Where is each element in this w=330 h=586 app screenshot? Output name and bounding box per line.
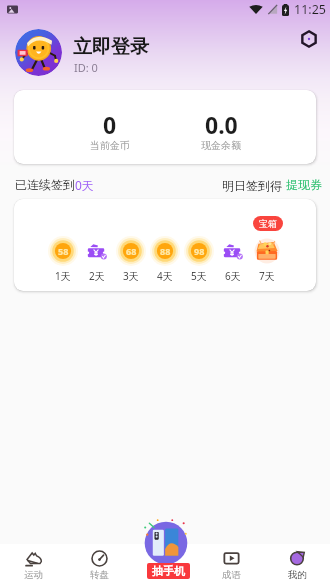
staticText: 5天 bbox=[191, 269, 207, 283]
staticText: 当前金币 bbox=[90, 139, 130, 152]
button[interactable]: 明日签到得 bbox=[222, 177, 322, 193]
staticText: 宝箱 bbox=[259, 218, 277, 229]
staticText: 2天 bbox=[89, 269, 105, 283]
button[interactable]: Settings bbox=[293, 23, 325, 55]
staticText: 7天 bbox=[259, 269, 275, 283]
staticText: 已连续签到 bbox=[15, 177, 75, 192]
staticText: 88 bbox=[160, 245, 171, 257]
button[interactable]: 0 bbox=[14, 90, 316, 164]
button[interactable]: 6天 bbox=[216, 236, 250, 282]
staticText: ID: 0 bbox=[74, 60, 98, 75]
button[interactable]: 抽手机 bbox=[140, 516, 192, 578]
staticText: 6天 bbox=[225, 269, 241, 283]
staticText: 现金余额 bbox=[201, 139, 241, 152]
staticText: 我的 bbox=[288, 569, 307, 581]
staticText: 3天 bbox=[123, 269, 139, 283]
staticText: 0天 bbox=[75, 177, 94, 193]
button[interactable]: 运动 bbox=[0, 544, 66, 586]
staticText: 转盘 bbox=[90, 569, 109, 581]
staticText: 成语 bbox=[222, 569, 241, 581]
staticText: 明日签到得 bbox=[222, 177, 286, 193]
button[interactable]: 98 bbox=[182, 236, 216, 282]
staticText: 11:25 bbox=[294, 1, 326, 18]
button[interactable]: 成语 bbox=[198, 544, 264, 586]
button[interactable]: 58 bbox=[46, 236, 80, 282]
button[interactable]: 我的 bbox=[264, 544, 330, 586]
button[interactable]: Avatar bbox=[15, 29, 62, 76]
staticText: 立即登录 bbox=[73, 35, 149, 59]
staticText: 提现券 bbox=[286, 177, 322, 192]
button[interactable]: 68 bbox=[114, 236, 148, 282]
staticText: 0 bbox=[103, 109, 117, 140]
staticText: 98 bbox=[194, 245, 205, 257]
staticText: 4天 bbox=[157, 269, 173, 283]
button[interactable]: 88 bbox=[148, 236, 182, 282]
button[interactable]: 7天 bbox=[250, 236, 284, 282]
staticText: 68 bbox=[126, 245, 137, 257]
staticText: 抽手机 bbox=[152, 564, 185, 578]
button[interactable]: 转盘 bbox=[66, 544, 132, 586]
staticText: 1天 bbox=[55, 269, 71, 283]
staticText: 运动 bbox=[24, 569, 43, 581]
button[interactable]: 2天 bbox=[80, 236, 114, 282]
staticText: 58 bbox=[58, 245, 69, 257]
staticText: 0.0 bbox=[205, 109, 238, 140]
